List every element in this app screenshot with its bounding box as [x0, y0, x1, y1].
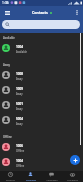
- staticText: Contacts: [32, 10, 48, 15]
- button[interactable]: 1006: [0, 139, 83, 154]
- button[interactable]: Messages: [41, 171, 62, 182]
- button[interactable]: 1004: [0, 154, 83, 169]
- staticText: 1004: [16, 159, 24, 163]
- staticText: Offline: [16, 164, 25, 168]
- staticText: Offline: [16, 149, 25, 153]
- staticText: Recents: [6, 178, 15, 181]
- staticText: Voicemail: [67, 178, 78, 181]
- staticText: Away: [16, 77, 23, 81]
- staticText: Away: [16, 92, 23, 96]
- staticText: Away: [3, 63, 11, 67]
- staticText: 1008: [16, 72, 24, 76]
- button[interactable]: Menu: [3, 8, 12, 17]
- staticText: Available: [3, 36, 15, 40]
- staticText: 1009: [16, 87, 24, 91]
- staticText: 5001: [16, 102, 24, 106]
- button[interactable]: Search contacts: [2, 20, 80, 29]
- staticText: Offline: [3, 135, 12, 139]
- button[interactable]: Add contact: [70, 155, 80, 165]
- staticText: 1004: [16, 45, 24, 49]
- button[interactable]: 5004: [0, 112, 83, 127]
- button[interactable]: 5001: [0, 97, 83, 112]
- button[interactable]: 1008: [0, 67, 83, 82]
- button[interactable]: More options: [72, 8, 81, 17]
- staticText: Messages: [46, 178, 58, 181]
- staticText: Away: [16, 107, 23, 111]
- button[interactable]: 1009: [0, 82, 83, 97]
- button[interactable]: Recents: [0, 171, 20, 182]
- button[interactable]: Voicemail: [62, 171, 83, 182]
- staticText: Away: [16, 122, 23, 126]
- staticText: 1:06: [2, 1, 9, 5]
- staticText: 5004: [16, 117, 24, 121]
- staticText: Contacts: [26, 178, 36, 181]
- staticText: Available: [16, 50, 27, 54]
- button[interactable]: Contacts: [20, 171, 41, 182]
- button[interactable]: 1004: [0, 40, 83, 55]
- staticText: 1006: [16, 144, 24, 148]
